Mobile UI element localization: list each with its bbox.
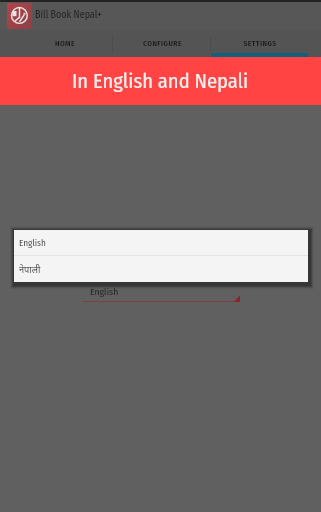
button[interactable]: English — [14, 230, 308, 255]
staticText: SETTINGS — [243, 39, 277, 48]
button[interactable]: English — [82, 284, 240, 302]
staticText: Bill Book Nepal+ — [35, 9, 102, 21]
staticText: CONFIGURE — [143, 39, 182, 48]
staticText: HOME — [55, 39, 75, 48]
button[interactable]: CONFIGURE — [114, 30, 211, 57]
button[interactable]: SETTINGS — [211, 30, 308, 57]
staticText: नेपाली — [19, 263, 41, 276]
staticText: English — [19, 237, 46, 248]
staticText: English — [90, 286, 119, 298]
staticText: In English and Nepali — [72, 69, 249, 94]
button[interactable]: नेपाली — [14, 256, 308, 282]
button[interactable]: HOME — [16, 30, 114, 57]
button[interactable]: Bill Book Nepal app icon — [7, 3, 32, 29]
